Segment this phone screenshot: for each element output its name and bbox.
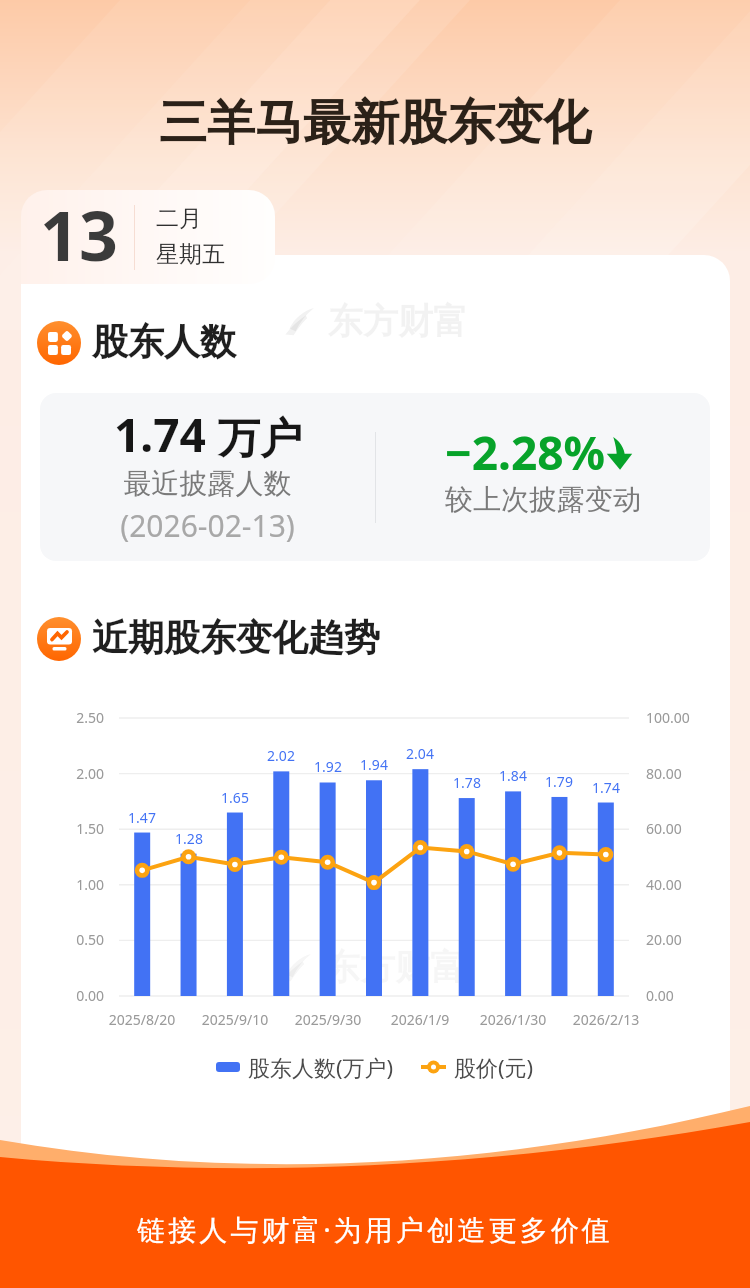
staticText: 东方财富 — [328, 299, 468, 343]
staticText: 链接人与财富·为用户创造更多价值 — [0, 1210, 750, 1248]
staticText: 40.00 — [646, 875, 726, 894]
staticText: 80.00 — [646, 764, 726, 783]
button[interactable]: 近期股东变化趋势 — [37, 617, 81, 661]
staticText: 2.50 — [44, 708, 104, 727]
staticText: 0.50 — [44, 930, 104, 949]
staticText: 最近披露人数 — [40, 466, 375, 501]
staticText: 0.00 — [646, 986, 726, 1005]
staticText: 1.74 — [576, 778, 636, 797]
staticText: 股东人数 — [92, 319, 236, 364]
staticText: 1.79 — [529, 772, 589, 791]
staticText: 较上次披露变动 — [376, 482, 710, 517]
staticText: 三羊马最新股东变化 — [0, 93, 750, 153]
staticText: 2025/8/20 — [92, 1010, 192, 1029]
staticText: 2026/1/30 — [463, 1010, 563, 1029]
staticText: 100.00 — [646, 708, 726, 727]
staticText: 2.02 — [251, 746, 311, 765]
staticText: 二月 — [156, 204, 202, 233]
staticText: 1.94 — [344, 755, 404, 774]
staticText: 近期股东变化趋势 — [92, 615, 380, 660]
staticText: 2025/9/10 — [185, 1010, 285, 1029]
staticText: 万户 — [218, 413, 302, 466]
staticText: 1.28 — [159, 829, 219, 848]
staticText: 1.00 — [44, 875, 104, 894]
staticText: 0.00 — [44, 986, 104, 1005]
staticText: −2.28% — [445, 421, 606, 484]
staticText: 13 — [40, 188, 118, 281]
staticText: 2.04 — [390, 744, 450, 763]
staticText: 2025/9/30 — [278, 1010, 378, 1029]
staticText: 1.92 — [298, 757, 358, 776]
staticText: 1.74 — [114, 403, 206, 466]
staticText: 东方财富 — [325, 945, 465, 989]
staticText: 2026/2/13 — [556, 1010, 656, 1029]
button[interactable]: 股东人数 — [37, 321, 81, 365]
staticText: 60.00 — [646, 819, 726, 838]
staticText: 20.00 — [646, 930, 726, 949]
staticText: 2.00 — [44, 764, 104, 783]
staticText: 股东人数(万户) — [248, 1052, 394, 1082]
staticText: (2026-02-13) — [40, 505, 375, 546]
staticText: 股价(元) — [454, 1052, 534, 1082]
staticText: 2026/1/9 — [370, 1010, 470, 1029]
staticText: 1.47 — [112, 808, 172, 827]
staticText: 1.50 — [44, 819, 104, 838]
staticText: 星期五 — [156, 240, 225, 269]
staticText: 1.84 — [483, 766, 543, 785]
staticText: 1.78 — [437, 773, 497, 792]
staticText: 1.65 — [205, 788, 265, 807]
